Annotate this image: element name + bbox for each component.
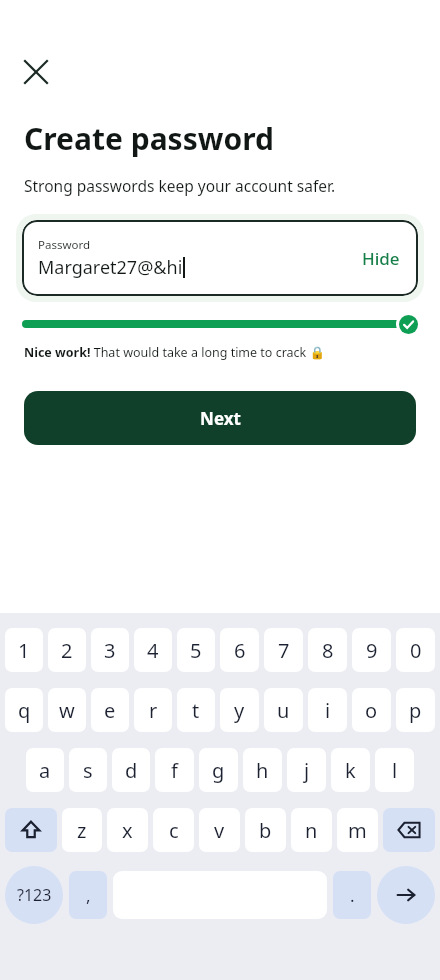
staticText: u bbox=[277, 697, 290, 724]
button[interactable]: Next bbox=[24, 391, 416, 445]
button[interactable]: , bbox=[69, 871, 107, 919]
button[interactable]: l bbox=[375, 748, 414, 792]
button[interactable]: u bbox=[264, 688, 303, 732]
button[interactable]: Shift bbox=[5, 808, 57, 852]
button[interactable]: n bbox=[291, 808, 332, 852]
button[interactable]: w bbox=[48, 688, 86, 732]
button[interactable]: Backspace bbox=[383, 808, 435, 852]
button[interactable]: Hide bbox=[362, 247, 400, 270]
button[interactable]: Close bbox=[14, 50, 58, 94]
staticText: x bbox=[122, 817, 133, 844]
staticText: 2 bbox=[61, 637, 73, 664]
staticText: w bbox=[59, 697, 75, 724]
staticText: s bbox=[83, 757, 93, 784]
button[interactable]: i bbox=[308, 688, 347, 732]
button[interactable]: Password bbox=[22, 220, 418, 296]
button[interactable]: 9 bbox=[352, 628, 391, 672]
button[interactable]: 1 bbox=[5, 628, 43, 672]
staticText: Create password bbox=[24, 118, 274, 159]
staticText: 3 bbox=[104, 637, 116, 664]
button[interactable]: 5 bbox=[177, 628, 215, 672]
button[interactable]: r bbox=[134, 688, 172, 732]
button[interactable]: p bbox=[396, 688, 435, 732]
button[interactable]: c bbox=[153, 808, 194, 852]
button[interactable]: v bbox=[199, 808, 240, 852]
staticText: p bbox=[409, 697, 422, 724]
button[interactable]: m bbox=[337, 808, 378, 852]
staticText: m bbox=[348, 817, 367, 844]
staticText: Next bbox=[200, 407, 241, 430]
staticText: t bbox=[192, 697, 200, 724]
button[interactable]: a bbox=[26, 748, 64, 792]
staticText: o bbox=[365, 697, 378, 724]
staticText: h bbox=[256, 757, 269, 784]
staticText: 7 bbox=[278, 637, 290, 664]
button[interactable]: Enter bbox=[377, 866, 435, 924]
staticText: a bbox=[39, 757, 51, 784]
button[interactable]: o bbox=[352, 688, 391, 732]
button[interactable]: 2 bbox=[48, 628, 86, 672]
button[interactable]: 8 bbox=[308, 628, 347, 672]
button[interactable]: 0 bbox=[396, 628, 435, 672]
staticText: r bbox=[149, 697, 158, 724]
button[interactable]: 4 bbox=[134, 628, 172, 672]
staticText: 5 bbox=[190, 637, 202, 664]
staticText: 8 bbox=[322, 637, 334, 664]
button[interactable]: k bbox=[331, 748, 370, 792]
staticText: j bbox=[304, 757, 310, 784]
staticText: Password bbox=[38, 237, 91, 253]
staticText: e bbox=[104, 697, 116, 724]
staticText: g bbox=[212, 757, 225, 784]
staticText: Nice work! That would take a long time t… bbox=[24, 344, 326, 361]
staticText: Hide bbox=[362, 247, 400, 270]
staticText: y bbox=[234, 697, 245, 724]
staticText: c bbox=[169, 817, 179, 844]
staticText: k bbox=[345, 757, 356, 784]
button[interactable]: ?123 bbox=[5, 866, 63, 924]
staticText: ?123 bbox=[17, 884, 52, 906]
button[interactable]: 6 bbox=[220, 628, 259, 672]
staticText: 1 bbox=[18, 637, 30, 664]
staticText: q bbox=[18, 697, 31, 724]
button[interactable]: j bbox=[287, 748, 326, 792]
staticText: b bbox=[259, 817, 272, 844]
staticText: d bbox=[125, 757, 138, 784]
button[interactable]: z bbox=[62, 808, 102, 852]
staticText: Strong passwords keep your account safer… bbox=[24, 175, 336, 196]
staticText: 6 bbox=[234, 637, 246, 664]
button[interactable]: e bbox=[91, 688, 129, 732]
button[interactable]: 7 bbox=[264, 628, 303, 672]
staticText: i bbox=[325, 697, 331, 724]
button[interactable]: g bbox=[199, 748, 238, 792]
button[interactable]: f bbox=[155, 748, 194, 792]
staticText: n bbox=[305, 817, 318, 844]
staticText: f bbox=[171, 757, 178, 784]
staticText: Margaret27@&hi bbox=[38, 255, 183, 280]
button[interactable]: x bbox=[107, 808, 148, 852]
staticText: z bbox=[77, 817, 87, 844]
button[interactable]: . bbox=[333, 871, 371, 919]
staticText: 9 bbox=[366, 637, 378, 664]
button[interactable]: b bbox=[245, 808, 286, 852]
button[interactable]: y bbox=[220, 688, 259, 732]
button[interactable]: 3 bbox=[91, 628, 129, 672]
button[interactable]: s bbox=[69, 748, 107, 792]
staticText: l bbox=[392, 757, 398, 784]
button[interactable]: h bbox=[243, 748, 282, 792]
staticText: v bbox=[214, 817, 225, 844]
staticText: . bbox=[350, 884, 355, 907]
staticText: 4 bbox=[147, 637, 159, 664]
staticText: 0 bbox=[410, 637, 422, 664]
button[interactable]: q bbox=[5, 688, 43, 732]
button[interactable]: d bbox=[112, 748, 150, 792]
staticText: , bbox=[86, 884, 91, 907]
button[interactable]: t bbox=[177, 688, 215, 732]
